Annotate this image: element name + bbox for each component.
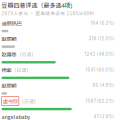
- button[interactable]: angelababy: [0, 112, 120, 120]
- staticText: （已选): [19, 98, 36, 105]
- staticText: 1242 (48.0%): [84, 52, 114, 57]
- button[interactable]: 杨紫: [0, 65, 120, 81]
- staticText: angelababy: [1, 113, 30, 120]
- staticText: 1541 (60.0%): [85, 67, 114, 72]
- staticText: 164 (6.2%): [90, 20, 114, 26]
- button[interactable]: 赵丽颖: [0, 34, 120, 49]
- staticText: 2679人参与 · 距离结束还有 2285分00秒: [1, 10, 94, 17]
- staticText: 虞书欣: [3, 97, 18, 105]
- staticText: 319 (12.0%): [88, 36, 114, 41]
- staticText: 迪丽热巴: [1, 19, 21, 27]
- staticText: 杨紫: [1, 66, 11, 74]
- button[interactable]: 虞书欣: [0, 96, 120, 112]
- staticText: 95 (4.9%): [92, 83, 114, 88]
- staticText: 豆瓣四普评选（最多选4项): [1, 1, 72, 9]
- button[interactable]: 赵露思: [0, 49, 120, 65]
- button[interactable]: 赵丽颖: [0, 81, 120, 96]
- staticText: 赵丽颖: [1, 35, 16, 42]
- staticText: （已选): [11, 66, 28, 73]
- staticText: 47 (3.9%): [93, 114, 114, 119]
- staticText: 赵露思: [1, 50, 16, 58]
- button[interactable]: 迪丽热巴: [0, 18, 120, 34]
- staticText: 赵丽颖: [1, 82, 16, 89]
- staticText: 1587 (62.2%): [85, 98, 114, 104]
- staticText: （已选): [16, 51, 33, 58]
